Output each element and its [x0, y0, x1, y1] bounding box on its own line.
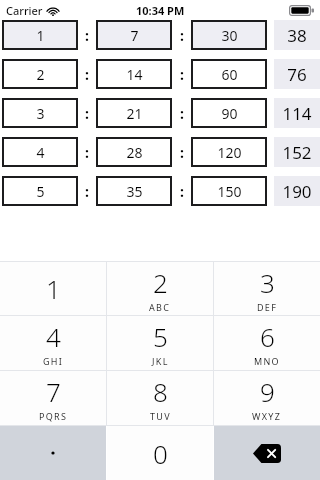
staticText: 2 — [36, 65, 45, 84]
staticText: : — [85, 182, 89, 201]
staticText: 1 — [36, 26, 45, 45]
staticText: : — [180, 182, 184, 201]
staticText: GHI — [43, 355, 64, 367]
button[interactable]: 60 — [191, 59, 267, 89]
button[interactable]: 7 — [96, 20, 172, 50]
staticText: 76 — [287, 63, 307, 86]
staticText: TUV — [150, 410, 171, 422]
staticText: 120 — [217, 143, 242, 162]
staticText: : — [85, 104, 89, 123]
button[interactable]: 35 — [96, 176, 172, 206]
staticText: 5 — [36, 182, 45, 201]
staticText: 38 — [287, 24, 307, 47]
staticText: : — [85, 143, 89, 162]
staticText: WXYZ — [252, 410, 282, 422]
button[interactable]: 6 — [214, 316, 320, 370]
staticText: ABC — [149, 301, 171, 313]
button[interactable]: 2 — [2, 59, 78, 89]
staticText: : — [180, 26, 184, 45]
staticText: 10:34 PM — [136, 3, 185, 18]
staticText: : — [85, 65, 89, 84]
staticText: DEF — [257, 301, 278, 313]
button[interactable]: 4 — [2, 137, 78, 167]
staticText: : — [180, 104, 184, 123]
staticText: 4 — [36, 143, 45, 162]
staticText: 30 — [221, 26, 238, 45]
staticText: 3 — [36, 104, 45, 123]
button[interactable]: 150 — [191, 176, 267, 206]
staticText: 0 — [153, 436, 168, 471]
staticText: MNO — [254, 355, 280, 367]
button[interactable]: 3 — [214, 262, 320, 315]
staticText: 150 — [217, 182, 242, 201]
staticText: 6 — [260, 319, 275, 354]
button[interactable]: 9 — [214, 371, 320, 425]
staticText: 5 — [153, 319, 168, 354]
staticText: 1 — [46, 271, 61, 306]
staticText: 7 — [130, 26, 139, 45]
staticText: 90 — [221, 104, 238, 123]
staticText: 60 — [221, 65, 238, 84]
button[interactable]: 0 — [107, 426, 213, 480]
staticText: : — [180, 143, 184, 162]
staticText: 114 — [282, 102, 312, 125]
staticText: 35 — [126, 182, 143, 201]
staticText: 9 — [260, 374, 275, 409]
staticText: JKL — [152, 355, 169, 367]
button[interactable]: 14 — [96, 59, 172, 89]
staticText: 28 — [126, 143, 143, 162]
button[interactable]: 120 — [191, 137, 267, 167]
button[interactable]: 28 — [96, 137, 172, 167]
button[interactable]: 1 — [2, 20, 78, 50]
button[interactable]: 2 — [107, 262, 213, 315]
staticText: 3 — [260, 265, 275, 300]
button[interactable]: 4 — [0, 316, 106, 370]
button[interactable]: 5 — [2, 176, 78, 206]
button[interactable]: Decimal point — [0, 426, 106, 480]
button[interactable]: 1 — [0, 262, 106, 315]
button[interactable]: 7 — [0, 371, 106, 425]
button[interactable]: 30 — [191, 20, 267, 50]
staticText: 4 — [46, 319, 61, 354]
staticText: 152 — [282, 141, 312, 164]
staticText: 14 — [126, 65, 143, 84]
staticText: 190 — [282, 180, 312, 203]
button[interactable]: Backspace — [214, 426, 320, 480]
staticText: Carrier — [6, 3, 43, 18]
staticText: : — [85, 26, 89, 45]
button[interactable]: 8 — [107, 371, 213, 425]
button[interactable]: 90 — [191, 98, 267, 128]
staticText: 7 — [46, 374, 61, 409]
staticText: 8 — [153, 374, 168, 409]
staticText: : — [180, 65, 184, 84]
staticText: 21 — [126, 104, 143, 123]
staticText: 2 — [153, 265, 168, 300]
staticText: PQRS — [39, 410, 68, 422]
button[interactable]: 3 — [2, 98, 78, 128]
button[interactable]: 5 — [107, 316, 213, 370]
button[interactable]: 21 — [96, 98, 172, 128]
